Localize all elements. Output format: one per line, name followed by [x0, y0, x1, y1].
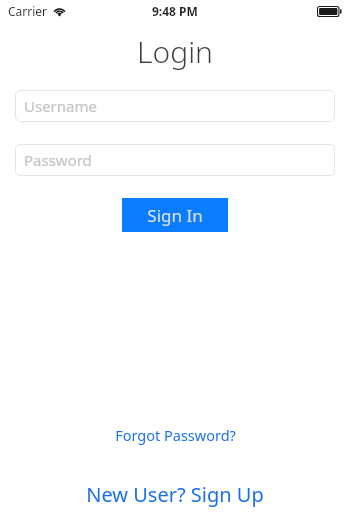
- staticText: Forgot Password?: [115, 425, 236, 445]
- staticText: Login: [137, 31, 213, 72]
- staticText: Username: [24, 96, 97, 116]
- button[interactable]: Username: [15, 90, 335, 122]
- button[interactable]: Sign In: [122, 198, 228, 232]
- other: Wi-Fi signal: [53, 6, 66, 16]
- button[interactable]: New User? Sign Up: [76, 478, 274, 511]
- staticText: Carrier: [8, 3, 48, 19]
- staticText: Password: [24, 150, 92, 170]
- staticText: New User? Sign Up: [86, 481, 264, 508]
- other: Battery full: [317, 6, 342, 17]
- button[interactable]: Forgot Password?: [105, 422, 246, 448]
- button[interactable]: Password: [15, 144, 335, 176]
- staticText: Sign In: [147, 204, 203, 227]
- staticText: 9:48 PM: [152, 3, 198, 19]
